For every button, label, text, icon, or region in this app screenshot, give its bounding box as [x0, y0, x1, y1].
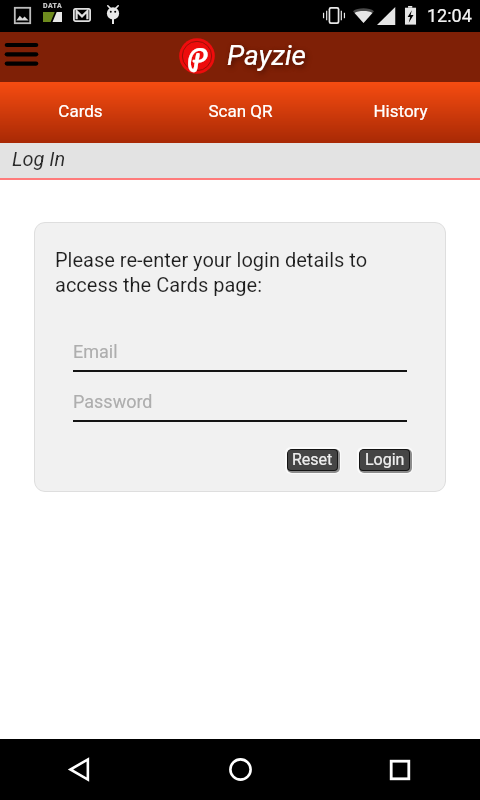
- button[interactable]: History: [320, 82, 480, 143]
- staticText: Log In: [12, 147, 66, 170]
- button[interactable]: Back: [0, 739, 160, 800]
- staticText: 12:04: [427, 5, 472, 26]
- button[interactable]: Menu: [0, 32, 46, 82]
- staticText: Scan QR: [208, 101, 273, 121]
- button[interactable]: Login: [357, 447, 413, 474]
- button[interactable]: Home: [160, 739, 320, 800]
- button[interactable]: Cards: [0, 82, 160, 143]
- button[interactable]: Reset: [285, 447, 341, 474]
- staticText: History: [373, 101, 428, 121]
- button[interactable]: Recents: [320, 739, 480, 800]
- staticText: Please re-enter your login details to ac…: [55, 248, 368, 297]
- staticText: DATA: [43, 2, 63, 10]
- button[interactable]: Scan QR: [160, 82, 320, 143]
- staticText: Email: [73, 341, 118, 362]
- staticText: P: [187, 37, 208, 73]
- staticText: Password: [73, 391, 153, 412]
- staticText: Cards: [58, 101, 103, 121]
- staticText: Login: [365, 450, 405, 469]
- staticText: Reset: [292, 450, 333, 469]
- staticText: Payzie: [227, 39, 306, 72]
